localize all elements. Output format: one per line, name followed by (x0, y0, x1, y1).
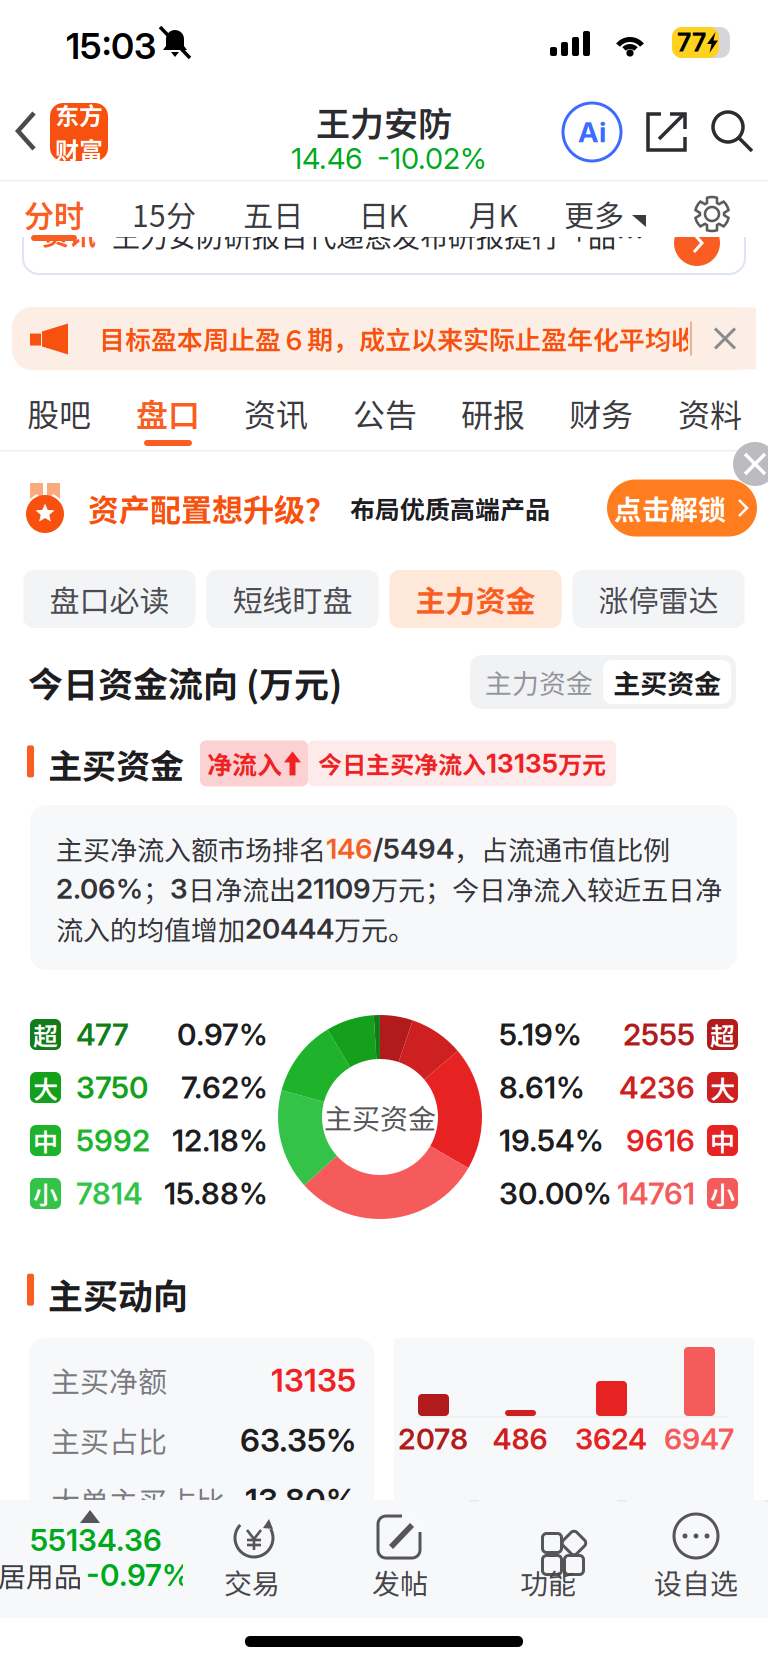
staticText: 小 (33, 1175, 58, 1212)
staticText: 涨停雷达 (598, 577, 718, 621)
staticText: 主买资金 (324, 1097, 436, 1137)
staticText: 63.35% (240, 1421, 356, 1459)
staticText: /5494 (373, 832, 454, 865)
staticText: 功能 (520, 1562, 576, 1602)
staticText: -0.97% (86, 1557, 191, 1593)
staticText: -10.02% (377, 141, 487, 176)
staticText: 日K (358, 192, 407, 236)
staticText: 分时 (24, 192, 84, 236)
staticText: 主买净流入额市场排名 (56, 829, 326, 868)
staticText: 13135 (486, 748, 558, 779)
staticText: 2.06% (56, 872, 143, 905)
button[interactable]: 日K (331, 191, 435, 237)
button[interactable]: Back (0, 95, 52, 167)
staticText: 13.80% (245, 1481, 356, 1519)
staticText: 9616 (626, 1122, 695, 1159)
staticText: 3 (170, 872, 188, 905)
button[interactable]: Share (645, 110, 689, 154)
staticText: 2555 (623, 1016, 695, 1053)
staticText: 发帖 (372, 1562, 428, 1602)
staticText: 7814 (76, 1175, 143, 1212)
staticText: 五日 (243, 192, 303, 236)
button[interactable]: 更多 (540, 191, 670, 237)
staticText: 13135 (271, 1361, 356, 1399)
staticText: 7.62% (181, 1069, 268, 1106)
button[interactable]: 资料 (658, 386, 762, 440)
staticText: 主力资金 (485, 662, 593, 702)
staticText: 主买动向 (48, 1269, 188, 1319)
staticText: 0.97% (177, 1016, 268, 1053)
button[interactable]: Chart settings (693, 195, 731, 233)
button[interactable]: 短线盯盘 (206, 570, 378, 628)
staticText: 净流入 (207, 745, 282, 781)
staticText: 研报 (461, 390, 525, 436)
staticText: 3750 (76, 1069, 148, 1106)
staticText: 19.54% (499, 1122, 604, 1159)
button[interactable]: 研报 (441, 386, 545, 440)
staticText: 14761 (617, 1175, 695, 1212)
button[interactable]: 资产配置想升级？ (0, 467, 768, 549)
staticText: ，占流通市值比例 (454, 829, 670, 868)
button[interactable]: 主力资金 (475, 660, 603, 704)
staticText: 月K (468, 192, 517, 236)
button[interactable]: 财务 (549, 386, 653, 440)
staticText: 万元 (558, 746, 606, 781)
staticText: 盘口必读 (49, 577, 169, 621)
staticText: 财富 (55, 132, 103, 167)
staticText: 30.00% (499, 1175, 612, 1212)
staticText: 主买净额 (51, 1359, 167, 1401)
staticText: 资讯 (244, 390, 308, 436)
button[interactable]: Search (710, 109, 756, 155)
button[interactable]: 股吧 (7, 386, 111, 440)
staticText: 东方 (55, 97, 103, 132)
staticText: 公告 (353, 390, 417, 436)
staticText: 15:03 (66, 24, 156, 68)
button[interactable]: 交易 (183, 1500, 321, 1618)
staticText: 14.46 (291, 141, 363, 176)
staticText: 中 (33, 1122, 58, 1159)
staticText: 家居用品 (0, 1555, 82, 1595)
button[interactable]: 涨停雷达 (572, 570, 744, 628)
button[interactable]: 目标盈本周止盈６期，成立以来实际止盈年化平均收益 (12, 307, 756, 370)
staticText: 股吧 (27, 390, 91, 436)
button[interactable]: 资讯 (224, 386, 328, 440)
staticText: 盘口 (136, 390, 200, 436)
staticText: 今日主买净流入 (318, 746, 486, 781)
button[interactable]: 55134.36 (0, 1500, 183, 1618)
staticText: 日净流出 (188, 869, 296, 908)
staticText: 477 (76, 1016, 129, 1053)
staticText: 主买资金 (48, 739, 184, 789)
staticText: 万元。 (334, 909, 415, 948)
button[interactable]: 盘口必读 (23, 570, 195, 628)
button[interactable]: 设自选 (627, 1500, 765, 1618)
button[interactable]: 公告 (333, 386, 437, 440)
staticText: 486 (492, 1421, 547, 1457)
staticText: 设自选 (654, 1562, 738, 1602)
staticText: 流入的均值增加 (56, 909, 245, 948)
staticText: ； (143, 869, 170, 908)
staticText: 短线盯盘 (232, 577, 352, 621)
staticText: 20444 (245, 912, 334, 945)
button[interactable]: 盘口 (116, 386, 220, 440)
button[interactable]: 五日 (221, 191, 325, 237)
button[interactable]: 月K (441, 191, 545, 237)
button[interactable]: 主买资金 (603, 660, 731, 704)
staticText: 大 (710, 1069, 735, 1106)
staticText: 55134.36 (30, 1522, 162, 1558)
staticText: 王力安防 (316, 97, 452, 146)
button[interactable]: East Money home (50, 103, 108, 161)
button[interactable]: AI assistant (563, 103, 621, 161)
button[interactable]: 分时 (2, 191, 106, 237)
button[interactable]: 主力资金 (389, 570, 561, 628)
staticText: 77 (677, 27, 706, 58)
button[interactable]: 功能 (479, 1500, 617, 1618)
staticText: 布局优质高端产品 (350, 490, 550, 526)
staticText: 主买占比 (51, 1419, 167, 1461)
staticText: 146 (326, 832, 373, 865)
button[interactable]: 15分 (112, 191, 216, 237)
button[interactable]: Close ad (733, 442, 768, 486)
staticText: 财务 (569, 390, 633, 436)
button[interactable]: 发帖 (331, 1500, 469, 1618)
staticText: 3624 (575, 1421, 647, 1457)
staticText: 目标盈本周止盈６期，成立以来实际止盈年化平均收益 (99, 320, 723, 357)
